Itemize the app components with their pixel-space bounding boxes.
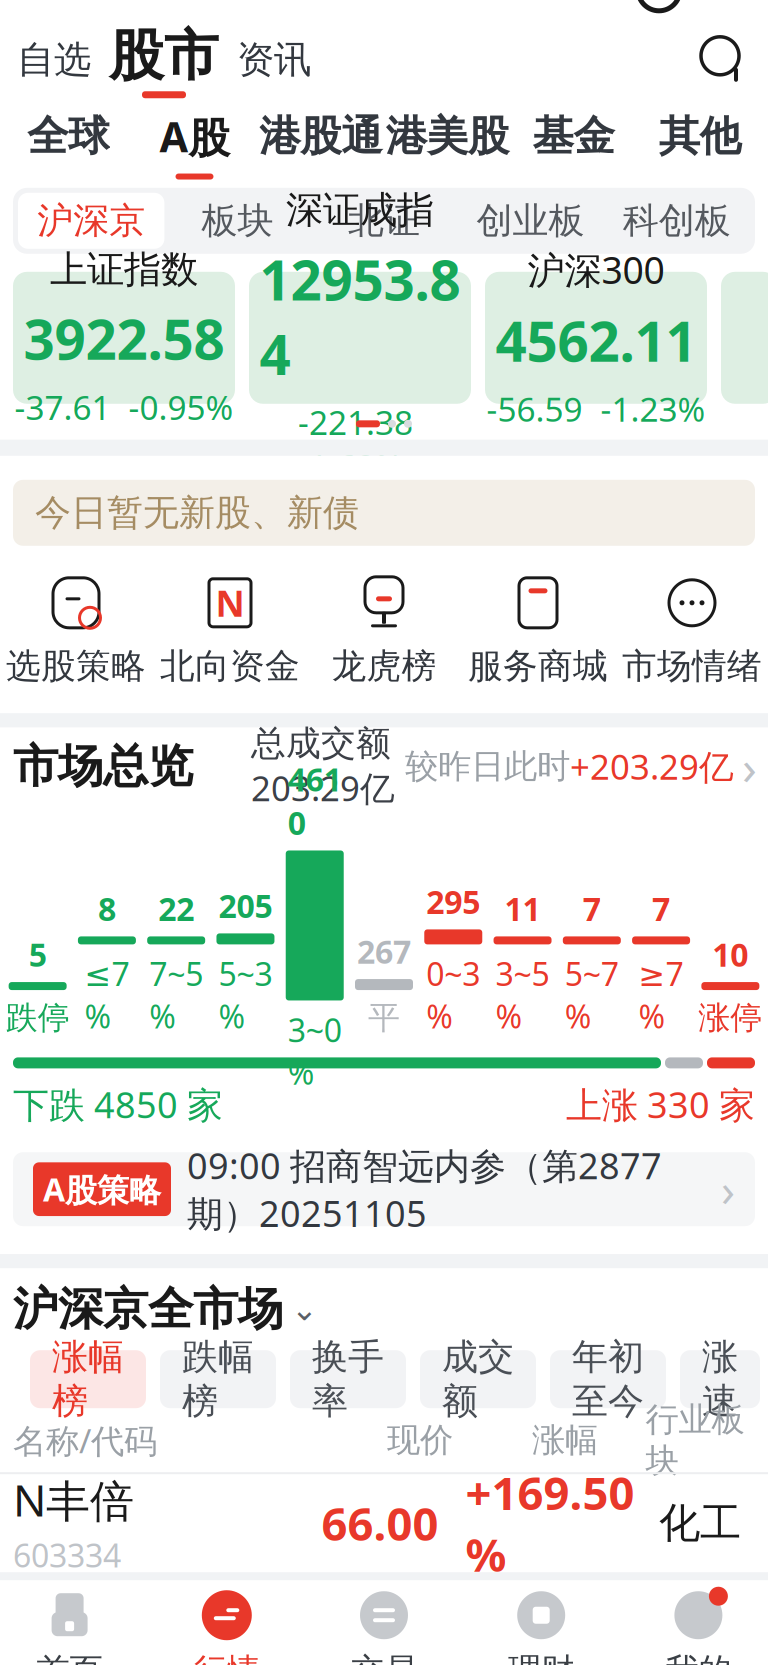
button[interactable]: 年初至今 [550, 1350, 666, 1408]
staticText: +169.50% [465, 1461, 634, 1585]
staticText: 7 [652, 887, 670, 930]
button[interactable]: 涨速 [680, 1350, 760, 1408]
staticText: 今日暂无新股、新债 [35, 491, 359, 535]
staticText: 现价 [387, 1420, 453, 1461]
staticText: 科创板 [623, 199, 731, 243]
staticText: 涨幅榜 [52, 1335, 124, 1423]
staticText: 5~7% [565, 952, 619, 1037]
staticText: 跌停 [6, 998, 70, 1037]
staticText: 换手率 [312, 1335, 384, 1423]
staticText: 沪深京 [37, 199, 145, 243]
staticText: 11 [504, 887, 540, 930]
button[interactable]: 沪深300 [485, 272, 707, 404]
button[interactable]: 资讯 [237, 37, 311, 83]
button[interactable]: 跌幅榜 [160, 1350, 276, 1408]
button[interactable]: 选股策略 [0, 574, 153, 687]
staticText: 港股通 [259, 110, 382, 162]
staticText: 港美股 [386, 110, 509, 162]
button[interactable]: 港美股 [384, 100, 510, 188]
staticText: 5~3% [218, 952, 272, 1037]
button[interactable]: 自选 [17, 37, 91, 83]
staticText: 创业板 [476, 199, 584, 243]
button[interactable]: 北证 [311, 193, 457, 249]
staticText: 板块 [202, 199, 274, 243]
button[interactable]: 创业板 [457, 193, 604, 249]
staticText: 总成交额203.29亿 [251, 722, 395, 811]
staticText: 4562.11 [495, 303, 696, 378]
staticText: -37.61 -0.95% [14, 385, 233, 429]
staticText: N丰倍 [13, 1470, 134, 1529]
button[interactable]: 我的 [620, 1589, 768, 1665]
staticText: 沪深300 [527, 245, 664, 294]
staticText: 5 [29, 932, 47, 976]
button[interactable]: 涨幅榜 [30, 1350, 146, 1408]
button[interactable]: 理财 [463, 1589, 620, 1665]
button[interactable]: N丰倍 [0, 1474, 768, 1572]
button[interactable]: 科创板 [604, 193, 750, 249]
button[interactable]: 板块 [164, 193, 311, 249]
button[interactable]: 市场情绪 [615, 574, 768, 687]
button[interactable]: 服务商城 [461, 574, 615, 687]
staticText: 下跌 4850 家 [13, 1080, 223, 1128]
button[interactable]: 全球 [5, 100, 131, 188]
button[interactable]: 沪深京 [18, 193, 164, 249]
staticText: 其他 [659, 110, 741, 162]
staticText: 7 [583, 887, 601, 930]
staticText: 行业板块 [645, 1399, 744, 1481]
button[interactable]: 龙虎榜 [307, 574, 461, 687]
button[interactable]: 基金 [510, 100, 637, 188]
button[interactable]: 沪深京全市场 [0, 1268, 768, 1350]
staticText: 沪深京全市场 [13, 1281, 283, 1338]
staticText: 上涨 330 家 [566, 1080, 755, 1128]
staticText: ≥7% [639, 952, 684, 1037]
staticText: 较昨日此时 [395, 746, 570, 787]
staticText: 3922.58 [23, 301, 224, 376]
staticText: 行情 [194, 1650, 260, 1665]
staticText: 成交额 [442, 1335, 514, 1423]
staticText: 化工 [659, 1498, 741, 1549]
button[interactable]: 成交额 [420, 1350, 536, 1408]
staticText: A股 [159, 108, 229, 165]
staticText: 我的 [665, 1650, 731, 1665]
button[interactable]: 交易 [305, 1589, 463, 1665]
staticText: 涨速 [702, 1335, 738, 1423]
button[interactable]: 深证成指 [249, 272, 471, 404]
staticText: 平 [368, 998, 400, 1037]
button[interactable]: 股市 [91, 21, 237, 98]
staticText: 涨停 [698, 998, 762, 1037]
staticText: 66.00 [321, 1492, 438, 1554]
staticText: 267 [357, 929, 411, 973]
staticText: 603334 [13, 1534, 121, 1576]
staticText: 全球 [27, 110, 109, 162]
button[interactable]: 其他 [637, 100, 763, 188]
staticText: +203.29亿 [570, 743, 734, 789]
button[interactable]: A股策略 [0, 1152, 768, 1226]
button[interactable]: N [153, 574, 307, 687]
button[interactable]: 市场总览 [0, 727, 768, 805]
button[interactable]: 搜索 [697, 34, 749, 86]
button[interactable]: 上证指数 [13, 272, 235, 404]
button[interactable]: 今日暂无新股、新债 [0, 480, 768, 546]
button[interactable]: A股 [131, 100, 258, 188]
staticText: 涨幅 [532, 1420, 598, 1461]
staticText: 选股策略 [6, 645, 146, 687]
button[interactable]: 换手率 [290, 1350, 406, 1408]
staticText: 市场情绪 [622, 645, 762, 687]
staticText: 龙虎榜 [331, 645, 436, 687]
staticText: 自选 [17, 37, 91, 83]
staticText: N [215, 578, 244, 627]
button[interactable]: 港股通 [258, 100, 384, 188]
button[interactable]: 首页 [0, 1589, 148, 1665]
staticText: 深证成指 [286, 187, 434, 233]
staticText: 北向资金 [160, 645, 300, 687]
staticText: 12953.84 [259, 242, 460, 391]
button[interactable]: 行情 [148, 1589, 305, 1665]
staticText: 上证指数 [50, 246, 198, 292]
staticText: 4610 [288, 757, 342, 844]
staticText: 资讯 [237, 37, 311, 83]
staticText: 7~5% [149, 952, 203, 1037]
staticText: 3~0% [288, 1008, 342, 1093]
staticText: -56.59 -1.23% [486, 387, 705, 431]
staticText: 服务商城 [468, 645, 608, 687]
